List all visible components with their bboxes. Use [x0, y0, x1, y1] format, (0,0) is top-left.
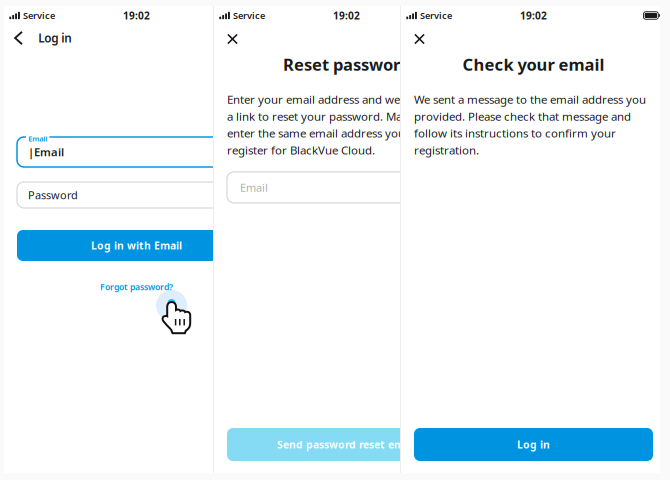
button[interactable]: Log in	[4, 27, 269, 49]
staticText: Service	[23, 9, 55, 22]
button[interactable]: |Email	[17, 137, 256, 167]
staticText: Service	[233, 9, 265, 22]
staticText: 19:02	[520, 9, 547, 22]
staticText: Email	[28, 133, 47, 144]
button[interactable]: Email	[227, 172, 466, 203]
staticText: 19:02	[333, 9, 360, 22]
staticText: Forgot password?	[100, 281, 173, 293]
staticText: Password	[28, 188, 78, 202]
button[interactable]: Forgot password?	[4, 278, 269, 296]
staticText: |Email	[28, 144, 64, 160]
staticText: Send password reset email	[277, 437, 416, 452]
staticText: Enter your email address and we will sen…	[227, 91, 472, 158]
button[interactable]: Close	[214, 28, 479, 50]
button[interactable]: Log in with Email	[17, 230, 256, 261]
staticText: 19:02	[123, 9, 150, 22]
button[interactable]: Close	[401, 28, 666, 50]
staticText: Log in	[38, 30, 71, 46]
staticText: Service	[420, 9, 452, 22]
staticText: Log in with Email	[91, 238, 182, 253]
button[interactable]: Log in	[414, 428, 653, 461]
button[interactable]: Send password reset email	[227, 428, 466, 461]
button[interactable]: Password	[17, 182, 256, 208]
staticText: We sent a message to the email address y…	[414, 91, 646, 158]
staticText: Reset password	[283, 53, 410, 75]
staticText: Email	[240, 180, 268, 195]
staticText: Check your email	[462, 53, 604, 75]
staticText: Log in	[517, 437, 550, 452]
